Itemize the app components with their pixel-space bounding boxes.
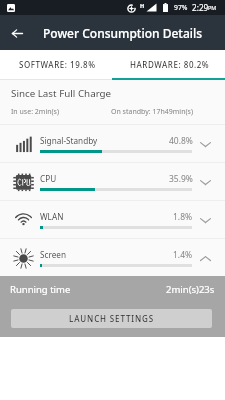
staticText: Running time [10,283,71,296]
staticText: CPU [40,173,57,184]
button[interactable]: LAUNCH SETTINGS [11,309,212,328]
staticText: Power Consumption Details [43,25,203,41]
staticText: 1.4% [173,249,193,261]
staticText: 35.9% [169,173,193,185]
staticText: Signal-Standby [40,135,98,146]
button[interactable]: HARDWARE: 80.2% [112,50,225,80]
button[interactable]: Expand [197,212,213,228]
button[interactable]: Back [0,16,34,50]
staticText: HARDWARE: 80.2% [130,59,210,70]
staticText: 97% [174,3,188,12]
button[interactable]: SOFTWARE: 19.8% [0,50,112,80]
button[interactable]: CPU [0,163,225,201]
staticText: LAUNCH SETTINGS [69,313,154,324]
button[interactable]: Signal-Standby [0,125,225,163]
button[interactable]: WLAN [0,201,225,239]
staticText: SOFTWARE: 19.8% [19,59,96,70]
button[interactable]: Collapse [197,250,213,266]
staticText: 2:29 [192,2,209,13]
button[interactable]: Expand [197,136,213,152]
staticText: Screen [40,249,66,260]
staticText: 2min(s)23s [166,283,215,296]
staticText: In use: 2min(s) [11,107,60,117]
staticText: H [140,2,145,9]
staticText: On standby: 17h49min(s) [111,107,194,117]
staticText: 40.8% [169,135,193,147]
staticText: PM [208,4,217,11]
button[interactable]: Screen [0,239,225,277]
button[interactable]: Expand [197,174,213,190]
staticText: Since Last Full Charge [11,87,112,100]
staticText: 1.8% [173,211,193,223]
staticText: WLAN [40,211,64,222]
